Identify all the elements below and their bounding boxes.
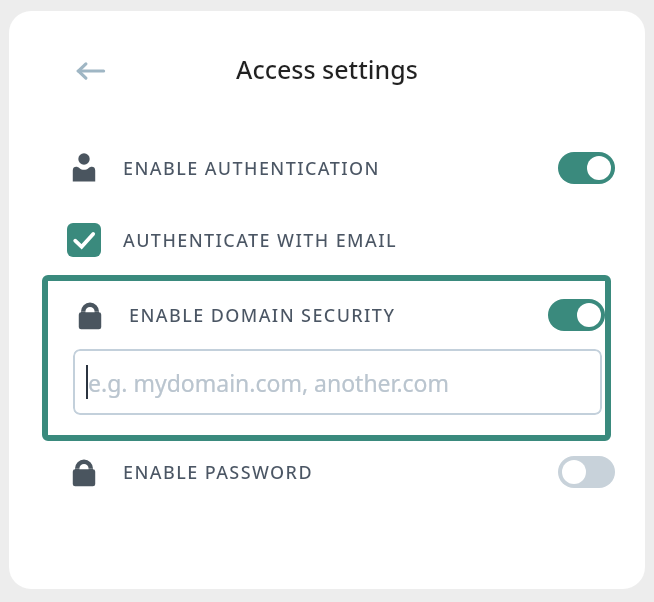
button[interactable]: AUTHENTICATE WITH EMAIL bbox=[9, 205, 645, 275]
button[interactable]: Back bbox=[69, 49, 113, 93]
button[interactable]: ENABLE DOMAIN SECURITY bbox=[48, 281, 605, 349]
button[interactable]: ENABLE PASSWORD bbox=[9, 441, 645, 503]
staticText: Access settings bbox=[236, 52, 418, 86]
button[interactable]: e.g. mydomain.com, another.com bbox=[73, 349, 602, 415]
button[interactable]: ENABLE AUTHENTICATION bbox=[9, 131, 645, 205]
staticText: ENABLE DOMAIN SECURITY bbox=[129, 303, 396, 328]
staticText: ENABLE AUTHENTICATION bbox=[123, 156, 380, 181]
staticText: ENABLE PASSWORD bbox=[123, 460, 313, 485]
button[interactable]: On bbox=[558, 152, 615, 184]
staticText: e.g. mydomain.com, another.com bbox=[88, 367, 450, 398]
button[interactable]: On bbox=[548, 299, 605, 331]
staticText: AUTHENTICATE WITH EMAIL bbox=[123, 228, 398, 253]
button[interactable]: Off bbox=[558, 456, 615, 488]
